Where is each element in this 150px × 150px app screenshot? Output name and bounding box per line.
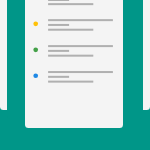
button[interactable]: Note 2 (25, 42, 123, 68)
button[interactable]: Note 3 (25, 68, 123, 94)
button[interactable]: Note 1 (25, 16, 123, 42)
